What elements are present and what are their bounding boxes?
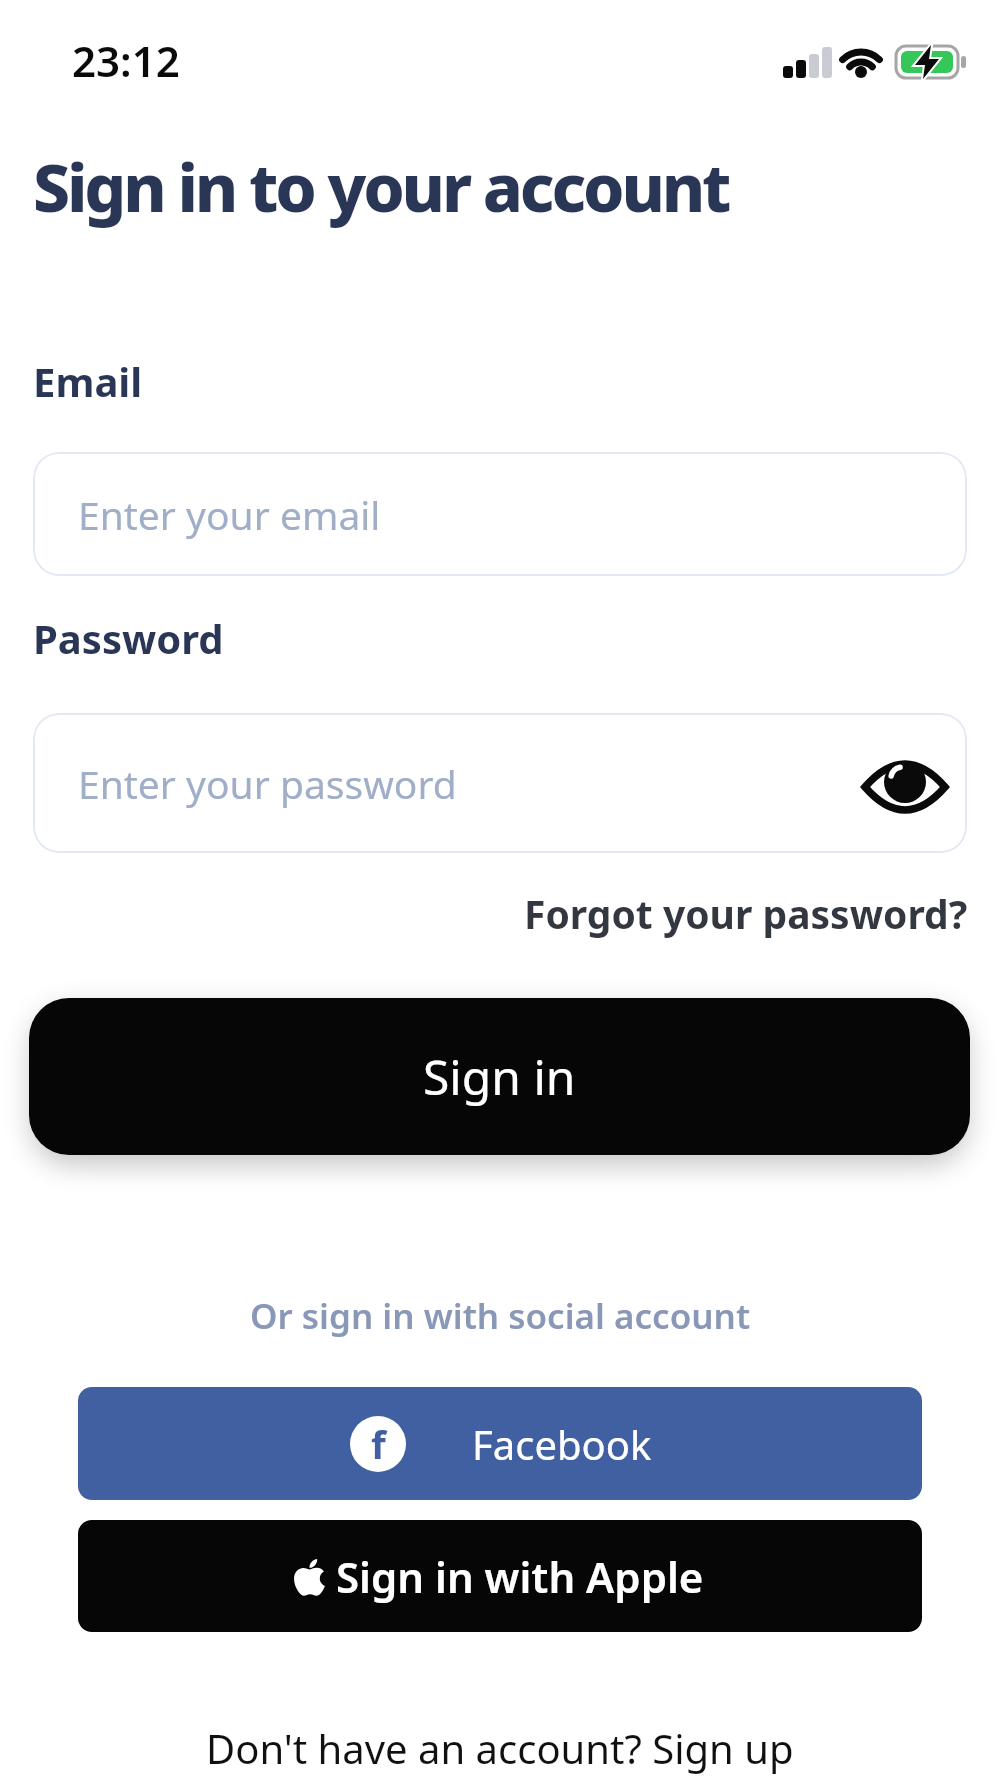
staticText: Sign in with Apple	[336, 1548, 704, 1605]
button[interactable]: f	[78, 1387, 922, 1500]
staticText: Email	[33, 354, 143, 408]
button[interactable]: Enter your email	[33, 452, 967, 576]
button[interactable]: Don't have an account? Sign up	[206, 1721, 794, 1775]
staticText: Password	[33, 611, 224, 665]
button[interactable]: Forgot your password?	[524, 887, 968, 940]
staticText: 23:12	[72, 32, 180, 89]
staticText: Sign in to your account	[33, 141, 729, 231]
staticText: Enter your email	[78, 488, 381, 541]
button[interactable]: Enter your password	[33, 713, 967, 853]
staticText: Facebook	[472, 1417, 652, 1471]
staticText: Sign in	[423, 1044, 576, 1109]
button[interactable]: Sign in	[29, 998, 970, 1155]
staticText: Enter your password	[78, 757, 457, 810]
staticText: f	[371, 1418, 386, 1470]
button[interactable]: Sign in with Apple	[78, 1520, 922, 1632]
staticText: Or sign in with social account	[250, 1292, 751, 1340]
